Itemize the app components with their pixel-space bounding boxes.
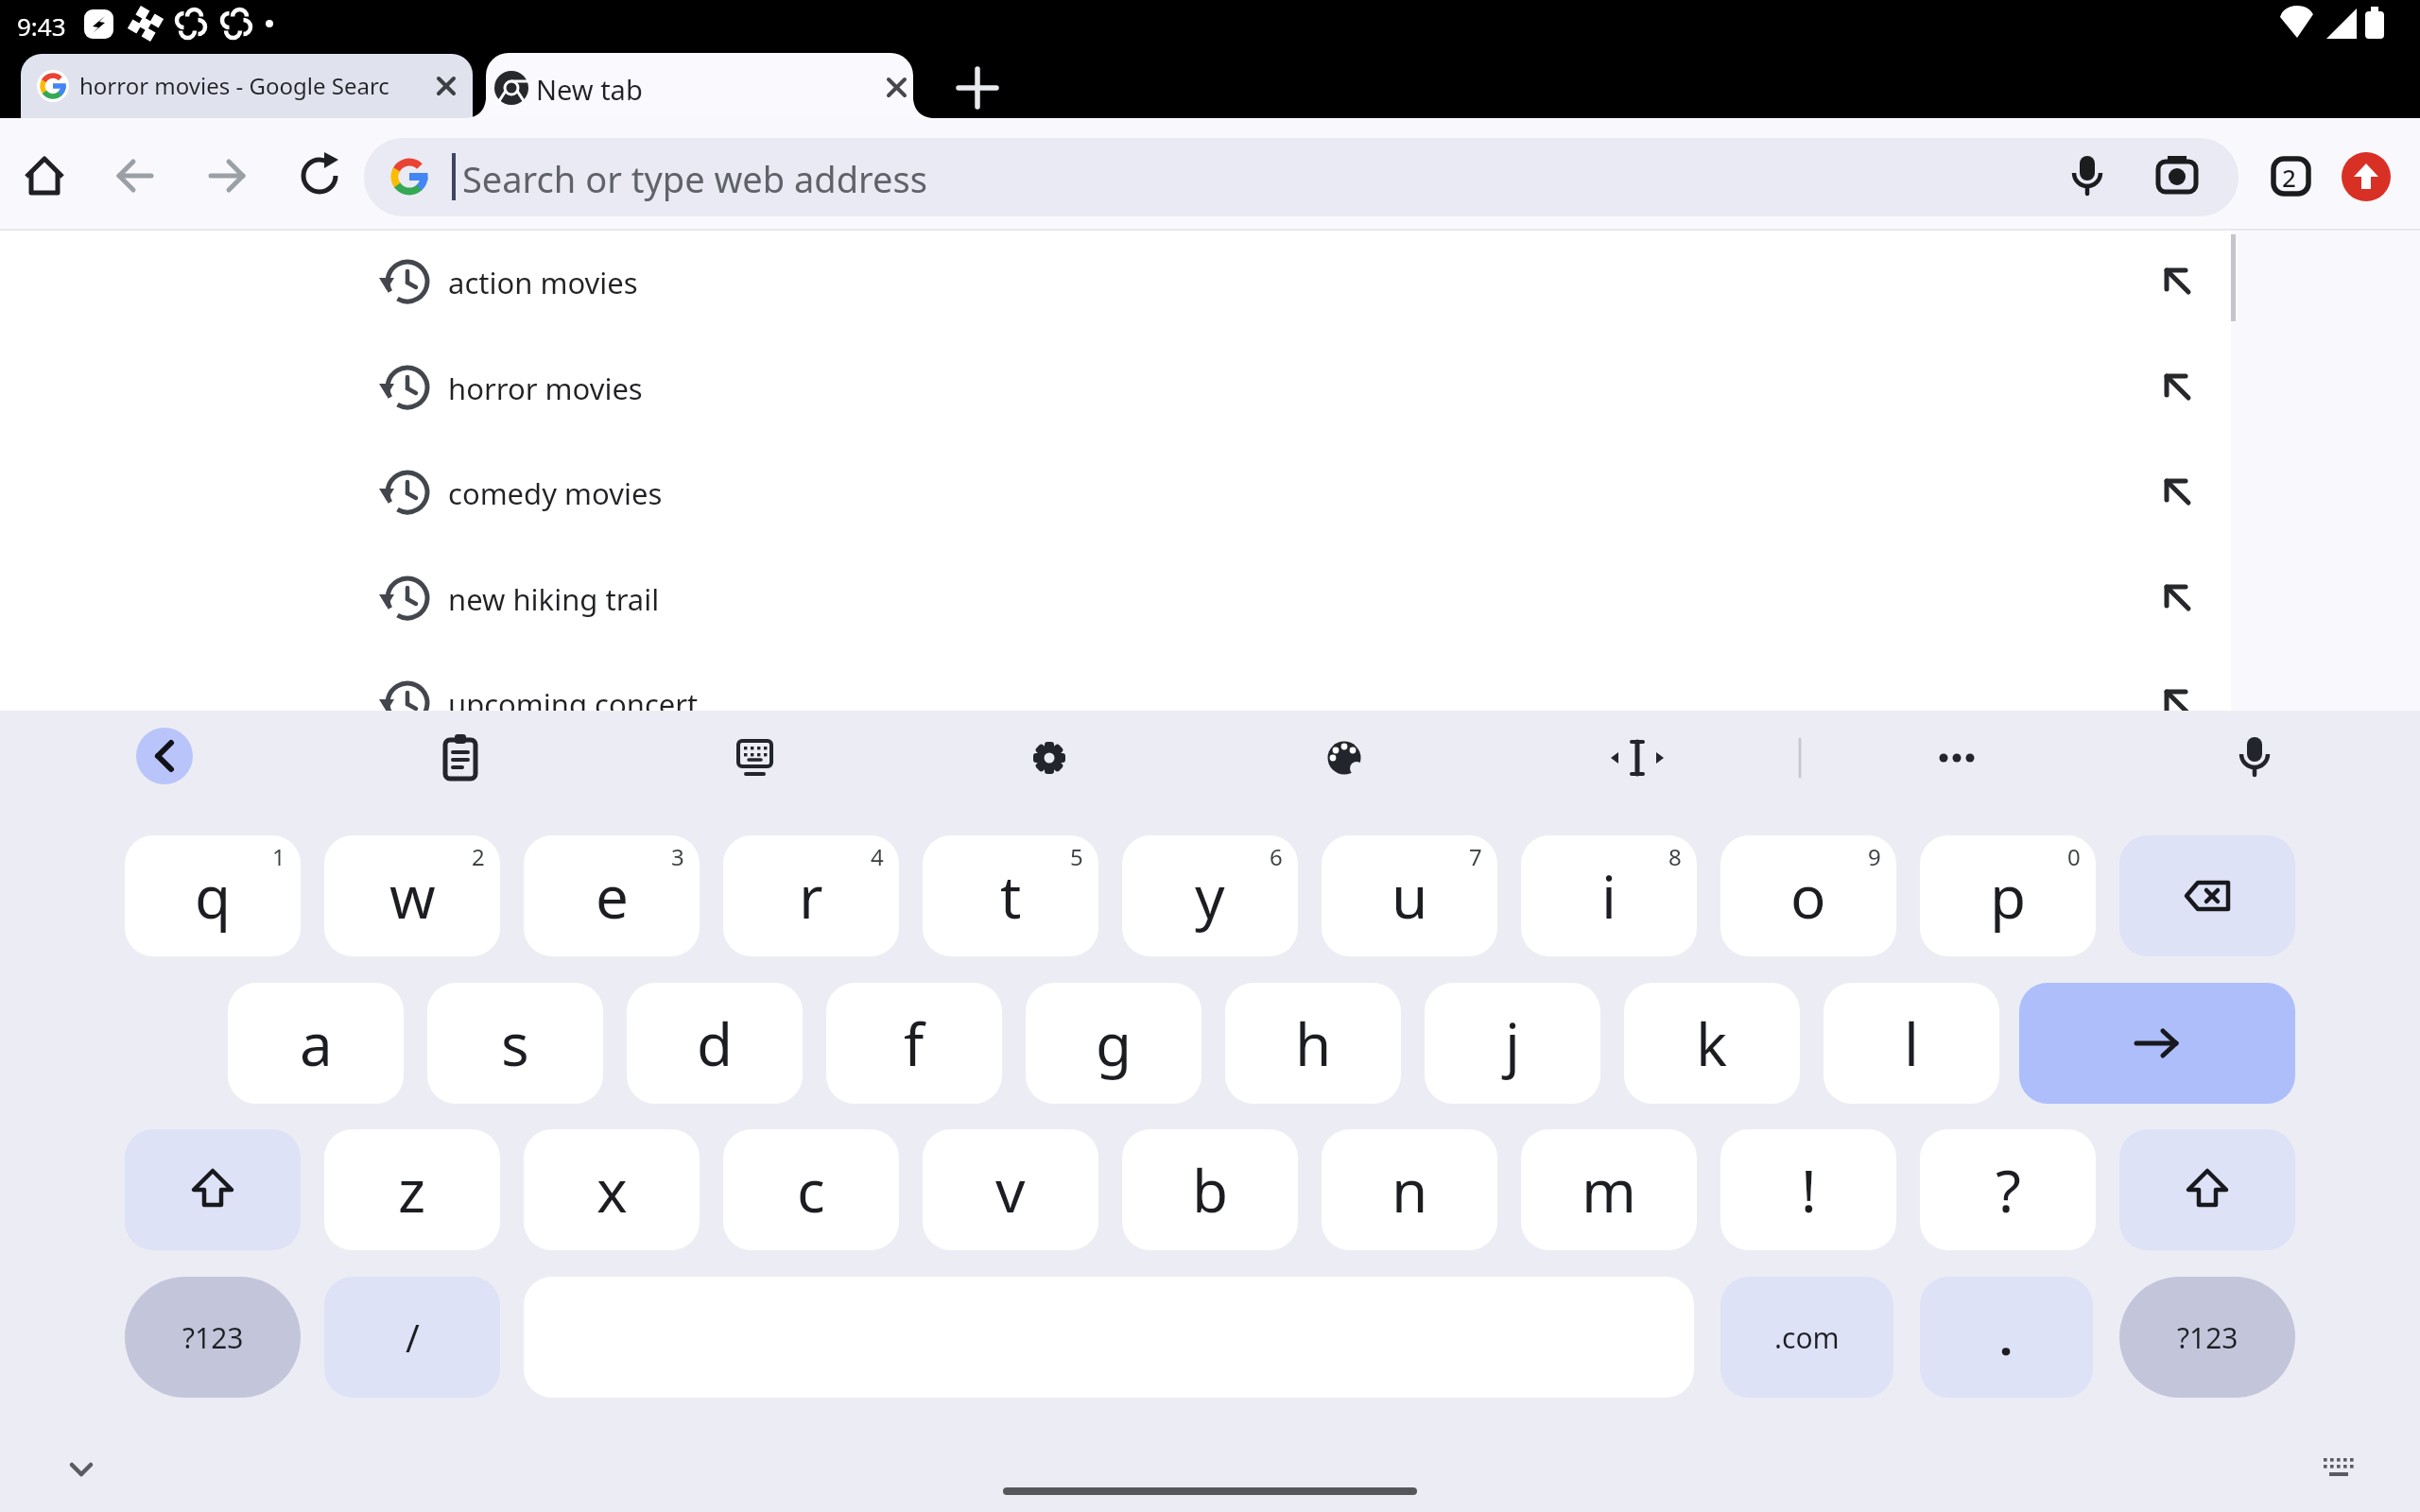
staticText: d <box>697 1004 734 1083</box>
button[interactable] <box>125 1129 301 1250</box>
staticText: e <box>596 856 629 936</box>
button[interactable]: r <box>723 835 899 956</box>
staticText: b <box>1192 1150 1229 1229</box>
button[interactable]: . <box>1920 1277 2093 1398</box>
staticText: ?123 <box>182 1318 244 1357</box>
button[interactable]: c <box>723 1129 899 1250</box>
staticText: ! <box>1801 1150 1817 1229</box>
button[interactable]: k <box>1624 983 1800 1104</box>
staticText: o <box>1790 856 1826 936</box>
staticText: h <box>1295 1004 1332 1083</box>
button[interactable] <box>955 65 1000 111</box>
staticText: q <box>195 856 232 936</box>
staticText: n <box>1391 1150 1428 1229</box>
staticText: upcoming concert <box>448 684 699 724</box>
button[interactable]: g <box>1026 983 1201 1104</box>
button[interactable]: ! <box>1720 1129 1896 1250</box>
button[interactable]: p <box>1920 835 2096 956</box>
button[interactable]: Search or type web address <box>364 138 2238 216</box>
button[interactable]: t <box>923 835 1098 956</box>
staticText: 6 <box>1270 841 1283 872</box>
staticText: p <box>1990 856 2027 936</box>
staticText: y <box>1195 856 1225 936</box>
button[interactable]: s <box>427 983 603 1104</box>
button[interactable]: ? <box>1920 1129 2096 1250</box>
button[interactable]: m <box>1521 1129 1697 1250</box>
staticText: v <box>995 1150 1026 1229</box>
staticText: 5 <box>1070 841 1083 872</box>
button[interactable]: o <box>1720 835 1896 956</box>
button[interactable] <box>2119 835 2295 956</box>
staticText: x <box>596 1150 628 1229</box>
button[interactable]: upcoming concert <box>0 650 2231 756</box>
staticText: w <box>389 856 436 936</box>
button[interactable]: action movies <box>0 229 2231 335</box>
staticText: ? <box>1996 1150 2021 1229</box>
staticText: 9 <box>1868 841 1881 872</box>
staticText: horror movies <box>448 369 643 408</box>
button[interactable]: ?123 <box>2119 1277 2295 1398</box>
staticText: New tab <box>536 71 643 108</box>
staticText: Search or type web address <box>462 154 927 203</box>
button[interactable]: new hiking trail <box>0 545 2231 651</box>
button[interactable]: horror movies - Google Searc <box>21 54 473 118</box>
staticText: i <box>1601 856 1616 936</box>
staticText: s <box>501 1004 529 1083</box>
staticText: t <box>1000 856 1022 936</box>
staticText: comedy movies <box>448 473 663 513</box>
button[interactable]: u <box>1322 835 1497 956</box>
button[interactable]: n <box>1322 1129 1497 1250</box>
staticText: 7 <box>1469 841 1482 872</box>
staticText: a <box>300 1004 333 1083</box>
staticText: f <box>904 1004 925 1083</box>
button[interactable]: q <box>125 835 301 956</box>
staticText: horror movies - Google Searc <box>79 70 389 101</box>
button[interactable]: New tab <box>486 53 913 118</box>
staticText: j <box>1505 1004 1520 1083</box>
staticText: 4 <box>871 841 884 872</box>
button[interactable]: v <box>923 1129 1098 1250</box>
staticText: new hiking trail <box>448 579 660 619</box>
staticText: action movies <box>448 263 638 302</box>
staticText: . <box>1999 1305 2014 1369</box>
staticText: r <box>799 856 823 936</box>
button[interactable]: j <box>1425 983 1600 1104</box>
button[interactable] <box>2019 983 2295 1104</box>
button[interactable]: y <box>1122 835 1298 956</box>
button[interactable]: f <box>826 983 1002 1104</box>
staticText: u <box>1391 856 1428 936</box>
staticText: 1 <box>272 841 285 872</box>
button[interactable]: horror movies <box>0 335 2231 440</box>
button[interactable]: .com <box>1720 1277 1893 1398</box>
staticText: 2 <box>472 841 485 872</box>
button[interactable]: l <box>1824 983 1999 1104</box>
button[interactable]: comedy movies <box>0 439 2231 545</box>
staticText: 8 <box>1668 841 1682 872</box>
staticText: 2 <box>2282 161 2296 194</box>
button[interactable]: ?123 <box>125 1277 301 1398</box>
staticText: 3 <box>671 841 684 872</box>
button[interactable]: h <box>1225 983 1401 1104</box>
button[interactable] <box>2119 1129 2295 1250</box>
staticText: / <box>406 1312 420 1363</box>
button[interactable]: a <box>228 983 404 1104</box>
button[interactable]: w <box>324 835 500 956</box>
button[interactable]: i <box>1521 835 1697 956</box>
staticText: .com <box>1774 1318 1840 1357</box>
staticText: c <box>797 1150 825 1229</box>
button[interactable]: x <box>524 1129 700 1250</box>
button[interactable]: / <box>324 1277 500 1398</box>
staticText: ?123 <box>2177 1318 2238 1357</box>
staticText: m <box>1582 1150 1636 1229</box>
staticText: l <box>1904 1004 1919 1083</box>
button[interactable]: z <box>324 1129 500 1250</box>
button[interactable]: d <box>627 983 803 1104</box>
button[interactable]: e <box>524 835 700 956</box>
staticText: k <box>1696 1004 1728 1083</box>
staticText: 9:43 <box>17 9 66 43</box>
staticText: 0 <box>2067 841 2081 872</box>
staticText: z <box>398 1150 426 1229</box>
button[interactable]: b <box>1122 1129 1298 1250</box>
staticText: g <box>1096 1004 1132 1083</box>
